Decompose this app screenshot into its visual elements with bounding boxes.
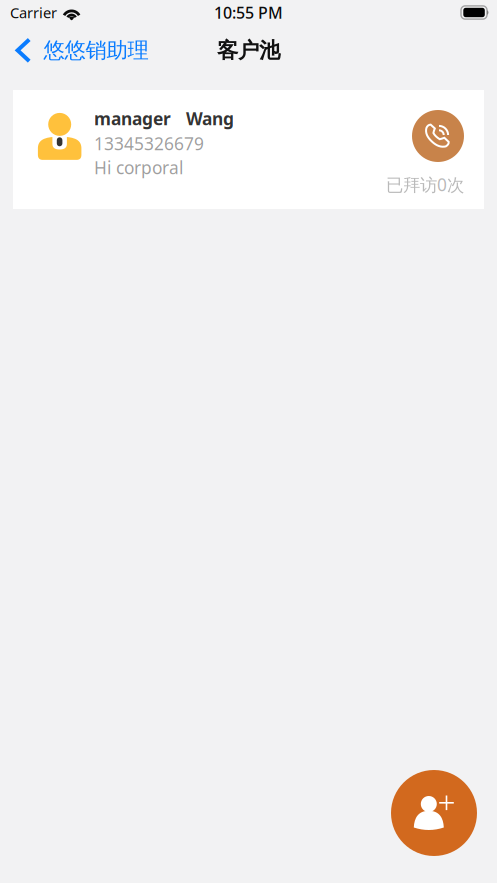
button[interactable]: manager Wang (13, 90, 484, 209)
staticText: manager Wang (94, 107, 234, 130)
staticText: 悠悠销助理 (43, 37, 148, 64)
button[interactable]: 悠悠销助理 (0, 25, 148, 72)
staticText: Carrier (10, 3, 57, 22)
staticText: 客户池 (217, 37, 280, 64)
staticText: 10:55 PM (214, 2, 283, 23)
button[interactable]: Add customer (391, 770, 477, 856)
staticText: Hi corporal (94, 156, 183, 179)
staticText: 13345326679 (94, 132, 204, 155)
button[interactable]: Call (412, 110, 464, 162)
staticText: 已拜访0次 (386, 173, 464, 196)
